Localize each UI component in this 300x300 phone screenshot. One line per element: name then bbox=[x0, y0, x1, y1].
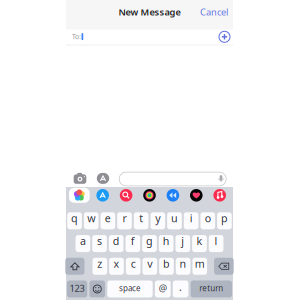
staticText: i bbox=[190, 211, 193, 225]
button[interactable]: s bbox=[92, 235, 107, 252]
button[interactable]: . bbox=[173, 280, 188, 297]
button[interactable]: space bbox=[107, 280, 153, 297]
button[interactable]: q bbox=[67, 212, 82, 229]
button[interactable]: Share bbox=[161, 187, 185, 203]
button[interactable]: r bbox=[117, 212, 132, 229]
button[interactable]: Shift bbox=[65, 258, 84, 275]
button[interactable]: i bbox=[184, 212, 198, 229]
staticText: d bbox=[113, 234, 120, 248]
staticText: t bbox=[139, 211, 143, 225]
button[interactable]: v bbox=[142, 258, 157, 275]
button[interactable]: n bbox=[176, 258, 190, 275]
button[interactable]: Photos bbox=[68, 187, 91, 203]
button[interactable]: b bbox=[159, 258, 174, 275]
button[interactable]: Cancel bbox=[197, 4, 231, 20]
button[interactable]: w bbox=[84, 212, 99, 229]
button[interactable]: return bbox=[191, 280, 232, 297]
button[interactable]: Images bbox=[114, 187, 138, 203]
staticText: return bbox=[199, 283, 223, 293]
button[interactable]: Emoji bbox=[89, 280, 105, 297]
staticText: l bbox=[215, 234, 218, 248]
staticText: y bbox=[155, 211, 160, 225]
staticText: e bbox=[105, 211, 111, 225]
button[interactable]: Music bbox=[208, 187, 231, 203]
button[interactable]: Camera bbox=[73, 171, 87, 185]
button[interactable]: p bbox=[217, 212, 232, 229]
staticText: j bbox=[181, 234, 184, 248]
staticText: m bbox=[195, 257, 205, 271]
button[interactable]: m bbox=[192, 258, 207, 275]
staticText: k bbox=[196, 234, 202, 248]
staticText: n bbox=[180, 257, 187, 271]
button[interactable]: Apps bbox=[96, 172, 109, 184]
staticText: g bbox=[146, 234, 153, 248]
staticText: f bbox=[131, 234, 135, 248]
button[interactable]: x bbox=[109, 258, 124, 275]
staticText: h bbox=[163, 234, 170, 248]
staticText: New Message bbox=[118, 6, 180, 18]
button[interactable]: k bbox=[192, 235, 207, 252]
button[interactable]: 123 bbox=[67, 280, 87, 297]
button[interactable]: y bbox=[150, 212, 165, 229]
button[interactable]: t bbox=[134, 212, 148, 229]
staticText: r bbox=[122, 211, 126, 225]
staticText: b bbox=[163, 257, 170, 271]
staticText: s bbox=[97, 234, 102, 248]
button[interactable]: a bbox=[76, 235, 90, 252]
button[interactable]: o bbox=[200, 212, 215, 229]
staticText: v bbox=[147, 257, 152, 271]
button[interactable]: Effects bbox=[138, 187, 161, 203]
button[interactable]: l bbox=[209, 235, 223, 252]
button[interactable]: Add contact bbox=[219, 31, 230, 42]
staticText: 123 bbox=[70, 282, 85, 294]
button[interactable]: Delete bbox=[214, 258, 234, 275]
button[interactable]: d bbox=[109, 235, 124, 252]
button[interactable]: Digital Touch bbox=[185, 187, 208, 203]
button[interactable]: g bbox=[142, 235, 157, 252]
staticText: w bbox=[87, 211, 95, 225]
staticText: o bbox=[205, 211, 211, 225]
button[interactable]: @ bbox=[155, 280, 171, 297]
button[interactable]: z bbox=[92, 258, 107, 275]
button[interactable]: c bbox=[126, 258, 140, 275]
staticText: space bbox=[119, 283, 141, 293]
button[interactable]: j bbox=[175, 235, 190, 252]
staticText: x bbox=[113, 257, 119, 271]
staticText: @ bbox=[159, 282, 167, 294]
staticText: z bbox=[97, 257, 102, 271]
staticText: Cancel bbox=[200, 6, 228, 18]
button[interactable]: App Store bbox=[91, 187, 114, 203]
staticText: a bbox=[80, 234, 86, 248]
staticText: u bbox=[171, 211, 178, 225]
button[interactable]: h bbox=[159, 235, 173, 252]
staticText: . bbox=[179, 280, 182, 294]
staticText: c bbox=[131, 257, 136, 271]
button[interactable]: u bbox=[167, 212, 182, 229]
staticText: p bbox=[221, 211, 228, 225]
button[interactable]: f bbox=[125, 235, 140, 252]
staticText: To: bbox=[72, 32, 81, 41]
staticText: q bbox=[71, 211, 78, 225]
button[interactable]: e bbox=[100, 212, 115, 229]
